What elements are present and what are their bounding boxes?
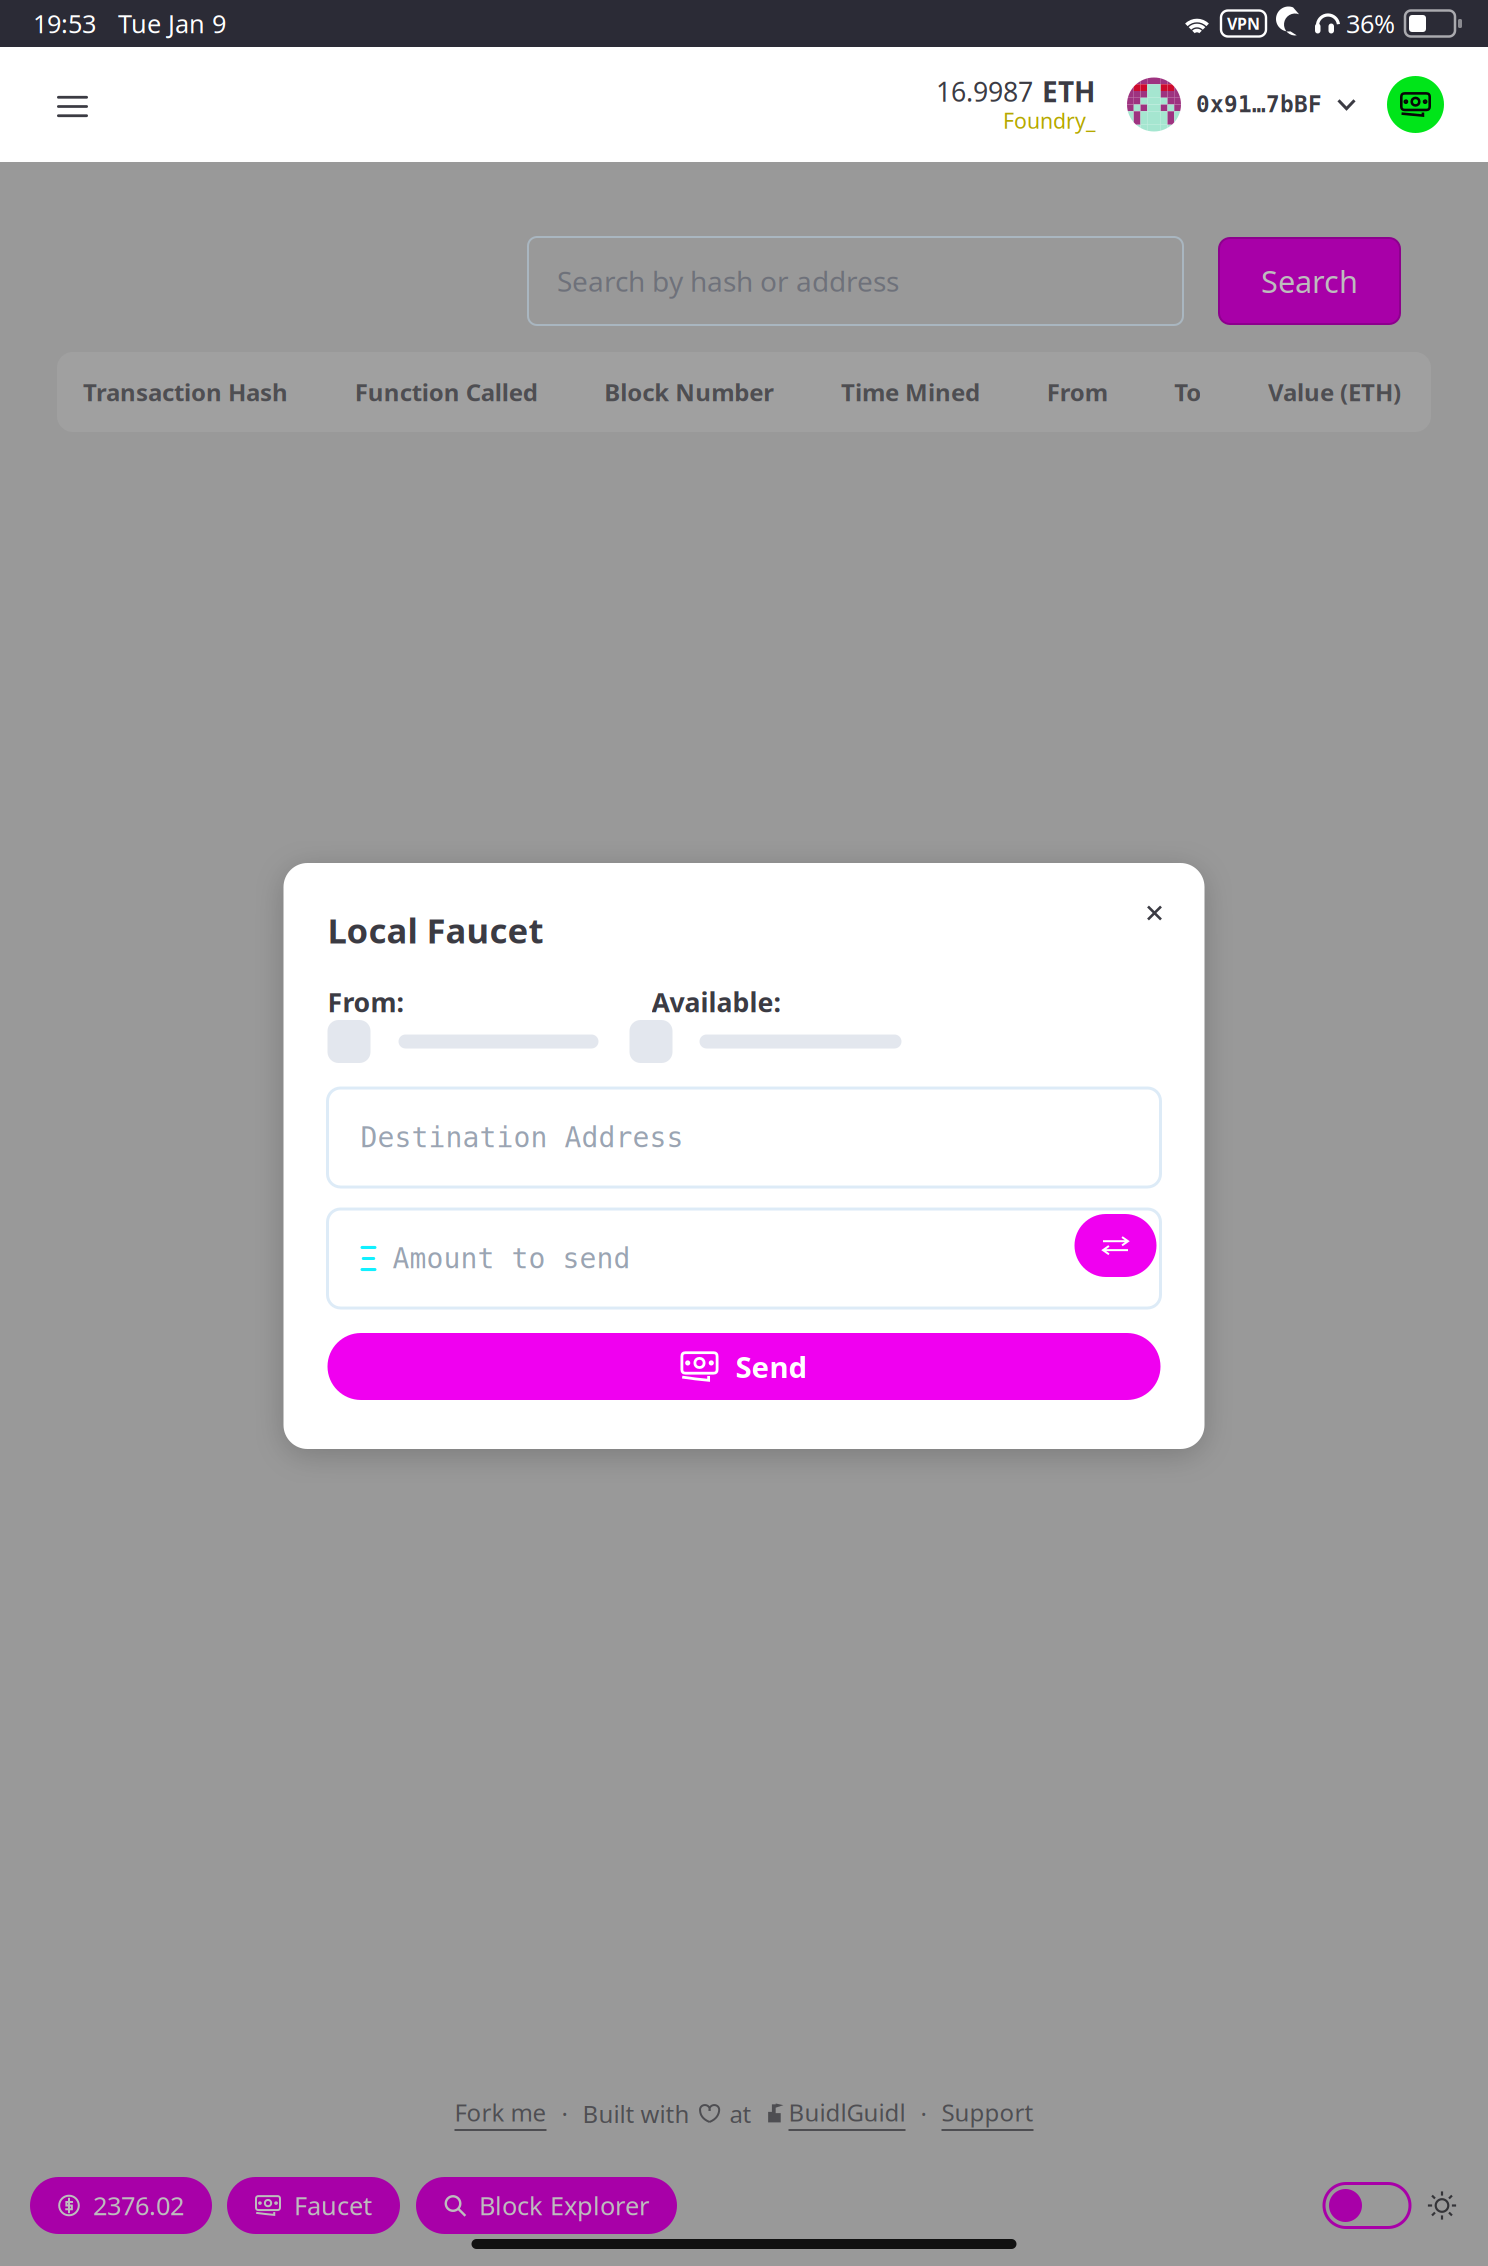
staticText: From	[1047, 376, 1108, 408]
button[interactable]: Dark mode toggle	[1324, 2183, 1410, 2227]
staticText: ·	[920, 2098, 926, 2129]
staticText: Local Faucet	[327, 907, 543, 953]
staticText: ·	[561, 2098, 567, 2129]
staticText: To	[1174, 376, 1201, 408]
staticText: Available:	[651, 984, 780, 1020]
staticText: Built with	[582, 2098, 689, 2129]
staticText: at	[729, 2098, 751, 2129]
button[interactable]: Menu	[29, 73, 88, 135]
button[interactable]: Faucet	[1387, 76, 1444, 133]
staticText: Transaction Hash	[83, 376, 288, 408]
staticText: Support	[941, 2096, 1033, 2128]
staticText: Function Called	[355, 376, 538, 408]
staticText: Block Number	[604, 376, 774, 408]
staticText: Block Explorer	[479, 2189, 649, 2222]
button[interactable]: Light mode	[1422, 2185, 1462, 2225]
button[interactable]: Support	[941, 2096, 1033, 2131]
staticText: Search by hash or address	[557, 262, 899, 300]
button[interactable]: Search	[1219, 238, 1400, 324]
staticText: Send	[735, 1347, 807, 1386]
staticText: Fork me	[454, 2096, 546, 2128]
button[interactable]: Fork me	[454, 2096, 546, 2131]
button[interactable]: 2376.02	[30, 2177, 212, 2234]
button[interactable]: Close	[1132, 891, 1176, 935]
staticText: 16.9987	[936, 74, 1033, 109]
staticText: Value (ETH)	[1268, 376, 1401, 408]
button[interactable]: BuidlGuidl	[788, 2096, 905, 2131]
staticText: ETH	[1042, 73, 1095, 110]
button[interactable]: Faucet	[227, 2177, 400, 2234]
button[interactable]: 0x91…7bBF	[1122, 72, 1375, 136]
staticText: 19:53	[33, 7, 96, 40]
staticText: Destination Address	[360, 1122, 683, 1153]
staticText: From:	[327, 984, 403, 1020]
button[interactable]: Send	[327, 1333, 1160, 1400]
staticText: 36%	[1346, 7, 1395, 40]
staticText: Time Mined	[841, 376, 980, 408]
staticText: Faucet	[294, 2189, 372, 2222]
staticText: 2376.02	[93, 2189, 184, 2222]
button[interactable]: Block Explorer	[416, 2177, 677, 2234]
staticText: Foundry_	[1003, 106, 1095, 135]
staticText: VPN	[1227, 13, 1260, 34]
staticText: BuidlGuidl	[788, 2096, 905, 2128]
staticText: Tue Jan 9	[118, 7, 226, 40]
button[interactable]: Switch currency	[1074, 1214, 1156, 1277]
staticText: Amount to send	[392, 1243, 630, 1274]
staticText: Search	[1261, 261, 1358, 301]
staticText: 0x91…7bBF	[1196, 91, 1322, 118]
